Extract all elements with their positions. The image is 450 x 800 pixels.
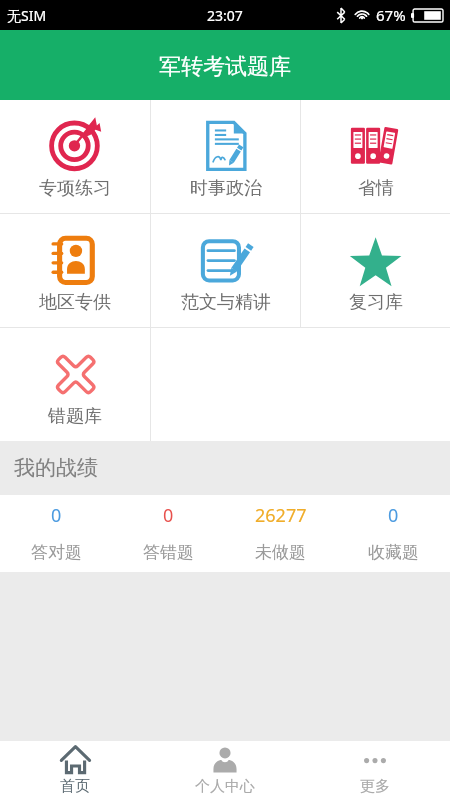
staticText: 收藏题: [368, 542, 419, 563]
staticText: 无SIM: [7, 6, 47, 25]
staticText: 专项练习: [39, 177, 111, 200]
button[interactable]: 个人中心: [150, 741, 300, 800]
button[interactable]: 0: [337, 495, 450, 572]
button[interactable]: 26277: [224, 495, 337, 572]
button[interactable]: 0: [112, 495, 224, 572]
staticText: 范文与精讲: [181, 291, 271, 314]
button[interactable]: 专项练习: [0, 100, 150, 213]
staticText: 军转考试题库: [159, 53, 291, 81]
staticText: 个人中心: [195, 777, 255, 796]
button[interactable]: 首页: [0, 741, 150, 800]
staticText: 省情: [358, 177, 394, 200]
staticText: 0: [388, 503, 399, 528]
button[interactable]: 复习库: [301, 214, 450, 327]
staticText: 首页: [60, 777, 90, 796]
staticText: 未做题: [255, 542, 306, 563]
staticText: 23:07: [207, 6, 243, 25]
staticText: 更多: [360, 777, 390, 796]
button[interactable]: 省情: [301, 100, 450, 213]
button[interactable]: 错题库: [0, 328, 150, 441]
staticText: 答对题: [31, 542, 82, 563]
button[interactable]: 范文与精讲: [151, 214, 300, 327]
button[interactable]: 地区专供: [0, 214, 150, 327]
staticText: 答错题: [143, 542, 194, 563]
button[interactable]: 时事政治: [151, 100, 300, 213]
staticText: 26277: [255, 503, 307, 528]
staticText: 0: [163, 503, 174, 528]
staticText: 67%: [376, 5, 406, 25]
staticText: 时事政治: [190, 177, 262, 200]
staticText: 错题库: [48, 405, 102, 428]
staticText: 我的战绩: [14, 455, 98, 481]
staticText: 复习库: [349, 291, 403, 314]
staticText: 0: [51, 503, 62, 528]
button[interactable]: 0: [0, 495, 112, 572]
staticText: 地区专供: [39, 291, 111, 314]
button[interactable]: 更多: [300, 741, 450, 800]
